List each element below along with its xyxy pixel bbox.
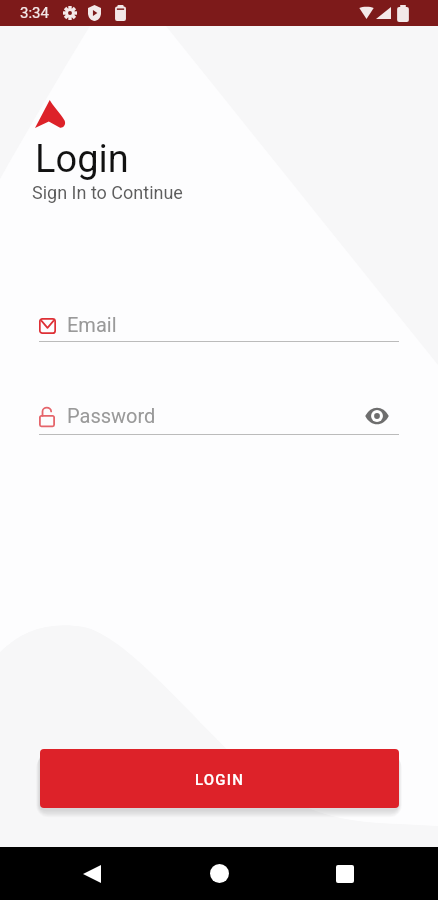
staticText: 3:34: [20, 4, 49, 22]
staticText: Email: [67, 313, 117, 336]
button[interactable]: Show password: [364, 405, 390, 427]
button[interactable]: Password: [39, 402, 357, 434]
button[interactable]: Home: [191, 847, 247, 900]
staticText: Sign In to Continue: [32, 182, 183, 203]
button[interactable]: Recent apps: [317, 847, 373, 900]
button[interactable]: Back: [64, 847, 120, 900]
button[interactable]: LOGIN: [40, 749, 399, 808]
staticText: Password: [67, 404, 156, 427]
staticText: Login: [35, 137, 129, 182]
staticText: LOGIN: [195, 771, 245, 789]
button[interactable]: Email: [39, 310, 399, 342]
